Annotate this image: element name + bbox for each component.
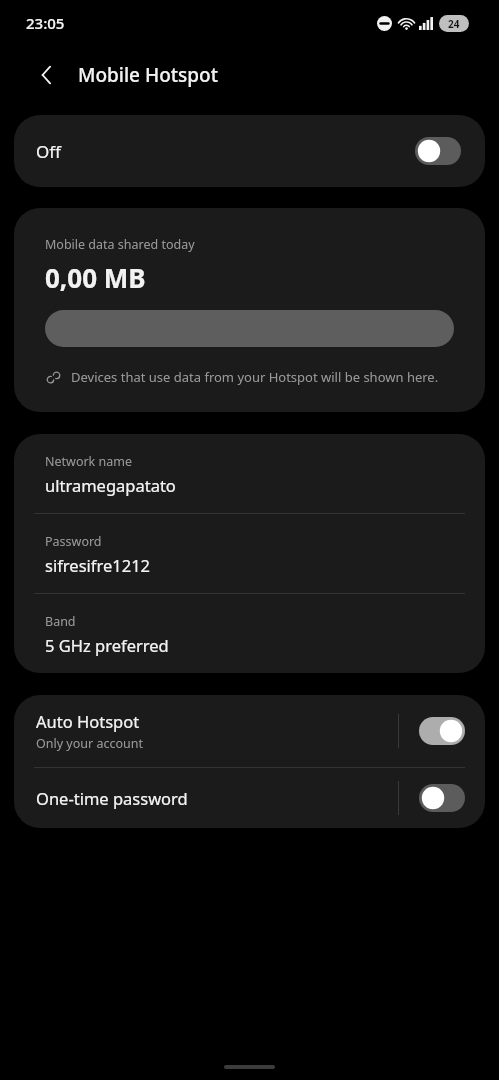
staticText: ultramegapatato — [45, 474, 176, 496]
staticText: Mobile Hotspot — [78, 62, 218, 88]
button[interactable]: Auto Hotspot — [14, 695, 485, 767]
staticText: 5 GHz preferred — [45, 634, 169, 656]
button[interactable]: Band — [14, 594, 485, 673]
staticText: Password — [45, 533, 102, 550]
staticText: Off — [36, 140, 415, 163]
staticText: Only your account — [36, 735, 143, 752]
button[interactable]: Password — [14, 514, 485, 593]
button[interactable]: Off — [14, 115, 485, 187]
staticText: 24 — [448, 17, 460, 31]
button[interactable]: One-time password — [14, 768, 485, 828]
staticText: One-time password — [36, 787, 188, 809]
button[interactable] — [419, 784, 465, 812]
staticText: Auto Hotspot — [36, 710, 140, 732]
staticText: 23:05 — [26, 13, 65, 33]
staticText: Mobile data shared today — [45, 236, 195, 253]
staticText: sifresifre1212 — [45, 554, 151, 576]
staticText: Devices that use data from your Hotspot … — [71, 368, 439, 386]
staticText: Network name — [45, 453, 133, 470]
button[interactable]: Back — [26, 54, 68, 96]
staticText: 0,00 MB — [45, 260, 146, 295]
staticText: Band — [45, 613, 76, 630]
button[interactable] — [419, 717, 465, 745]
button[interactable]: Network name — [14, 434, 485, 513]
